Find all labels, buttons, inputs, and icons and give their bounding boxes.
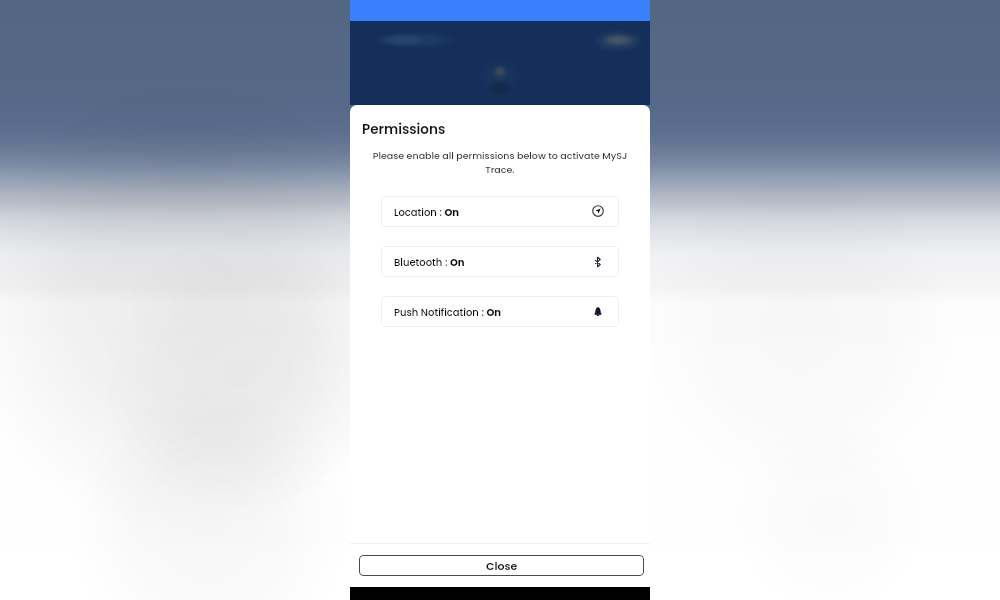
staticText: Push Notification : On [394,305,502,319]
staticText: Please enable all permissions below to a… [366,149,634,176]
other: Bluetooth [592,256,604,268]
button[interactable]: Push Notification : On [381,296,619,327]
staticText: Bluetooth : On [394,255,465,269]
staticText: Permissions [362,120,446,139]
button[interactable]: Location : On [381,196,619,227]
button[interactable]: Close [359,555,644,576]
button[interactable]: Bluetooth : On [381,246,619,277]
staticText: Location : On [394,205,460,219]
staticText: Close [486,558,518,573]
other: Location [592,205,604,217]
other: Push notification [592,306,604,318]
